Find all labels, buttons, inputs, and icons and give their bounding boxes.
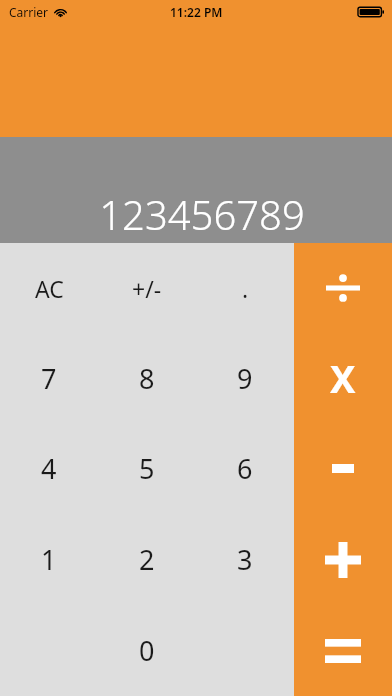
button[interactable]: 7	[0, 333, 98, 423]
staticText: 0	[139, 632, 155, 669]
staticText: 3	[237, 541, 253, 578]
staticText: 4	[41, 450, 57, 487]
staticText: 1	[41, 541, 57, 578]
button[interactable]: +/-	[98, 243, 196, 333]
staticText: 11:22 PM	[170, 4, 223, 20]
staticText: AC	[35, 273, 64, 304]
button[interactable]: 9	[196, 333, 294, 423]
button[interactable]: 0	[98, 605, 196, 696]
button[interactable]: Divide	[294, 243, 392, 333]
staticText: 6	[237, 450, 253, 487]
staticText: 2	[139, 541, 155, 578]
staticText: 8	[139, 360, 155, 397]
button[interactable]: 4	[0, 423, 98, 514]
staticText: +/-	[132, 273, 162, 304]
button[interactable]: Minus	[294, 423, 392, 514]
button[interactable]: 6	[196, 423, 294, 514]
button[interactable]: Plus	[294, 514, 392, 605]
staticText: 5	[139, 450, 155, 487]
button[interactable]: 5	[98, 423, 196, 514]
button[interactable]: 1	[0, 514, 98, 605]
button[interactable]: AC	[0, 243, 98, 333]
button[interactable]: 2	[98, 514, 196, 605]
staticText: Carrier	[9, 4, 49, 20]
staticText: 9	[237, 360, 253, 397]
button[interactable]: .	[196, 243, 294, 333]
button[interactable]: Equals	[294, 605, 392, 696]
staticText: 123456789	[99, 187, 305, 241]
button[interactable]: Multiply	[294, 333, 392, 423]
staticText: X	[330, 352, 356, 404]
staticText: 7	[41, 360, 57, 397]
staticText: .	[242, 273, 249, 304]
button[interactable]: 3	[196, 514, 294, 605]
button[interactable]: 8	[98, 333, 196, 423]
